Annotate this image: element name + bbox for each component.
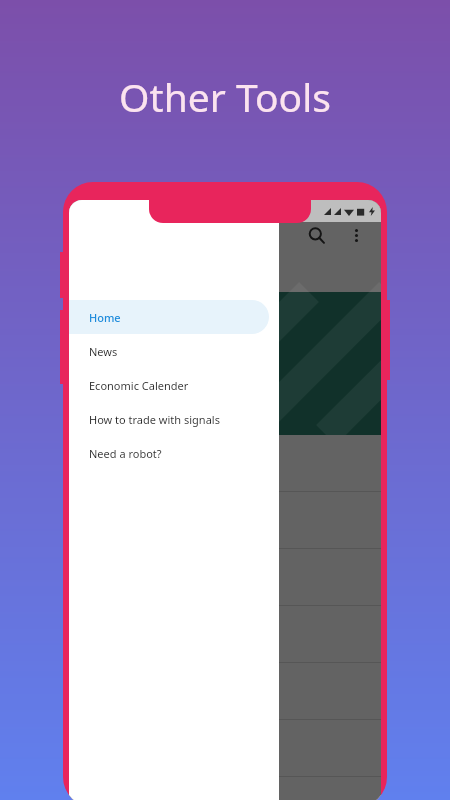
- button[interactable]: Home: [69, 300, 269, 334]
- staticText: Other Tools: [0, 70, 450, 123]
- button[interactable]: Need a robot?: [69, 436, 269, 470]
- button[interactable]: [69, 663, 381, 720]
- button[interactable]: [69, 435, 381, 492]
- staticText: News: [89, 344, 118, 359]
- button[interactable]: [69, 606, 381, 663]
- button[interactable]: More options: [339, 218, 373, 252]
- button[interactable]: [69, 777, 381, 800]
- button[interactable]: Economic Calender: [69, 368, 269, 402]
- button[interactable]: [69, 549, 381, 606]
- staticText: How to trade with signals: [89, 412, 220, 427]
- staticText: Economic Calender: [89, 378, 189, 393]
- button[interactable]: How to trade with signals: [69, 402, 269, 436]
- staticText: Home: [89, 310, 121, 325]
- button[interactable]: News: [69, 334, 269, 368]
- button[interactable]: Search: [299, 218, 333, 252]
- button[interactable]: [69, 720, 381, 777]
- button[interactable]: [69, 492, 381, 549]
- staticText: Need a robot?: [89, 446, 162, 461]
